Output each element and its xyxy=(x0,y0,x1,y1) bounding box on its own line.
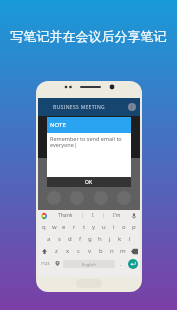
button[interactable]: ?123 xyxy=(38,257,52,270)
staticText: e xyxy=(62,223,66,231)
button[interactable]: h xyxy=(95,233,105,245)
other: Google xyxy=(41,213,47,219)
staticText: Thank xyxy=(58,212,73,219)
staticText: x xyxy=(66,247,70,255)
staticText: i xyxy=(131,104,133,111)
button[interactable]: z xyxy=(50,245,62,257)
button[interactable]: BUSINESS MEETING xyxy=(38,98,140,116)
staticText: z xyxy=(55,247,58,255)
button[interactable]: l xyxy=(125,233,135,245)
staticText: f xyxy=(79,235,82,243)
staticText: ?123 xyxy=(41,261,50,266)
button[interactable]: p xyxy=(129,221,139,233)
staticText: s xyxy=(58,235,61,243)
button[interactable]: a xyxy=(43,233,54,245)
button[interactable]: s xyxy=(54,233,65,245)
button[interactable]: r xyxy=(69,221,79,233)
button[interactable]: i xyxy=(109,221,119,233)
button[interactable]: . xyxy=(115,257,126,270)
staticText: n xyxy=(110,247,114,255)
staticText: l xyxy=(129,235,131,243)
staticText: a xyxy=(47,235,51,243)
button[interactable]: b xyxy=(95,245,106,257)
staticText: k xyxy=(118,235,122,243)
staticText: q xyxy=(42,223,46,231)
button[interactable]: v xyxy=(84,245,95,257)
staticText: Remember to send email to everyone| xyxy=(50,135,128,149)
button[interactable]: c xyxy=(73,245,84,257)
button[interactable]: Enter xyxy=(126,257,140,270)
staticText: I'm xyxy=(113,212,121,219)
button[interactable]: e xyxy=(59,221,69,233)
button[interactable]: m xyxy=(117,245,128,257)
button[interactable]: n xyxy=(106,245,117,257)
staticText: p xyxy=(132,223,136,231)
staticText: i xyxy=(113,223,115,231)
staticText: NOTE xyxy=(50,121,66,129)
staticText: v xyxy=(88,247,92,255)
staticText: English xyxy=(82,262,96,267)
staticText: o xyxy=(122,223,126,231)
button[interactable]: d xyxy=(65,233,75,245)
staticText: BUSINESS MEETING xyxy=(53,104,106,111)
button[interactable]: k xyxy=(115,233,125,245)
staticText: j xyxy=(109,235,111,243)
staticText: c xyxy=(77,247,80,255)
button[interactable]: Emoji xyxy=(52,257,63,270)
button[interactable]: u xyxy=(99,221,109,233)
staticText: w xyxy=(52,223,57,231)
staticText: . xyxy=(120,260,122,268)
button[interactable]: x xyxy=(62,245,73,257)
button[interactable]: q xyxy=(39,221,49,233)
staticText: OK xyxy=(85,179,93,186)
button[interactable]: o xyxy=(119,221,129,233)
staticText: g xyxy=(88,235,92,243)
staticText: h xyxy=(98,235,102,243)
button[interactable]: Space xyxy=(63,260,115,268)
button[interactable]: t xyxy=(79,221,89,233)
button[interactable]: y xyxy=(89,221,99,233)
button[interactable]: Backspace xyxy=(128,245,140,257)
other: Voice input xyxy=(131,213,137,219)
staticText: y xyxy=(92,223,96,231)
button[interactable]: OK xyxy=(47,177,131,187)
staticText: u xyxy=(102,223,106,231)
staticText: d xyxy=(68,235,72,243)
staticText: 写笔记并在会议后分享笔记 xyxy=(0,28,177,44)
staticText: t xyxy=(83,223,86,231)
button[interactable]: j xyxy=(105,233,115,245)
button[interactable]: w xyxy=(49,221,59,233)
button[interactable]: f xyxy=(75,233,85,245)
staticText: r xyxy=(73,223,76,231)
staticText: I xyxy=(92,212,94,219)
staticText: b xyxy=(99,247,103,255)
staticText: m xyxy=(120,247,126,255)
button[interactable]: g xyxy=(85,233,95,245)
button[interactable]: Shift xyxy=(38,245,50,257)
button[interactable]: Info xyxy=(128,103,136,111)
